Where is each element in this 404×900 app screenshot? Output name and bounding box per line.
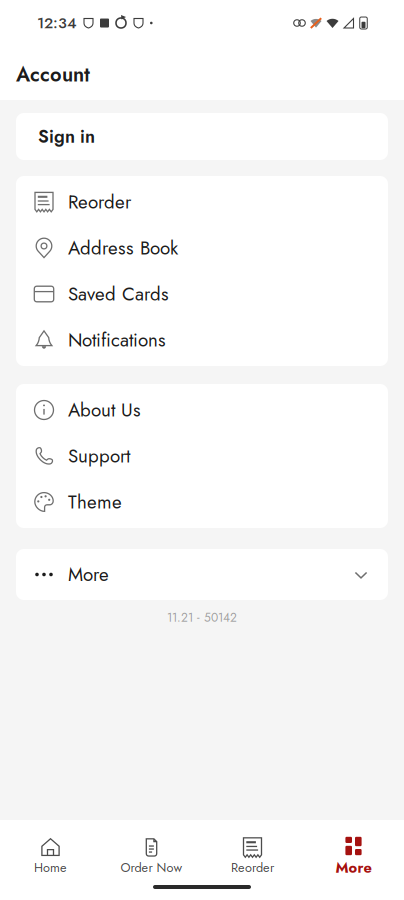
- staticText: Sign in: [38, 123, 95, 149]
- staticText: Address Book: [68, 234, 178, 261]
- button[interactable]: More: [303, 835, 404, 878]
- staticText: Order Now: [120, 858, 182, 877]
- button[interactable]: Reorder: [202, 836, 303, 877]
- button[interactable]: Theme: [16, 479, 388, 525]
- button[interactable]: More: [16, 549, 388, 600]
- staticText: Account: [16, 60, 90, 89]
- staticText: Reorder: [231, 858, 274, 877]
- button[interactable]: Saved Cards: [16, 271, 388, 317]
- button[interactable]: Sign in: [16, 113, 388, 160]
- staticText: Notifications: [68, 326, 166, 353]
- button[interactable]: Reorder: [16, 179, 388, 225]
- staticText: 11.21 - 50142: [167, 609, 237, 626]
- staticText: About Us: [68, 396, 141, 423]
- staticText: Reorder: [68, 188, 131, 215]
- staticText: 12:34: [37, 12, 77, 34]
- staticText: More: [335, 857, 371, 878]
- staticText: Theme: [68, 488, 122, 515]
- button[interactable]: About Us: [16, 387, 388, 433]
- staticText: Support: [68, 442, 130, 469]
- button[interactable]: Support: [16, 433, 388, 479]
- staticText: More: [68, 561, 109, 588]
- staticText: Home: [34, 858, 67, 877]
- button[interactable]: Home: [0, 836, 101, 877]
- button[interactable]: Address Book: [16, 225, 388, 271]
- staticText: Saved Cards: [68, 280, 169, 307]
- button[interactable]: Notifications: [16, 317, 388, 363]
- button[interactable]: Order Now: [101, 836, 202, 877]
